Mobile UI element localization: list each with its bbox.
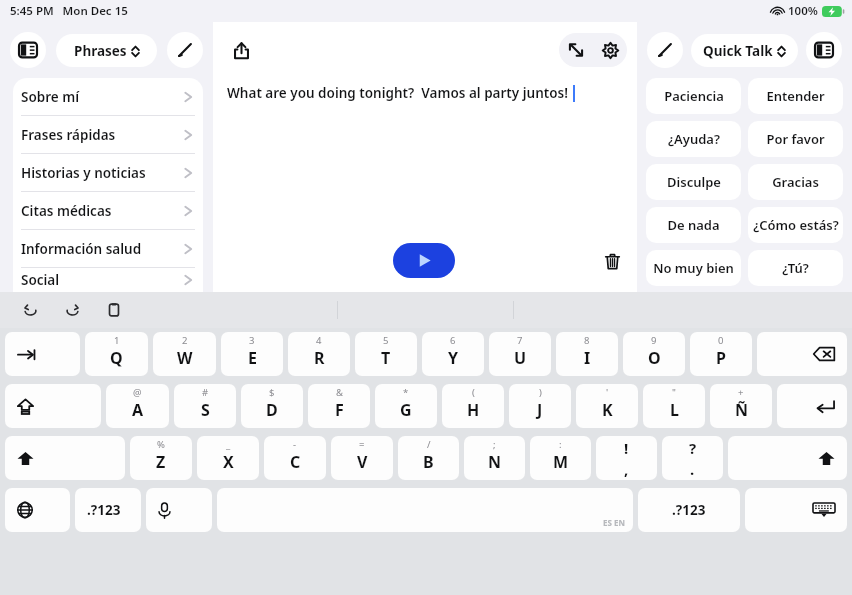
- staticText: Citas médicas: [21, 202, 184, 220]
- staticText: +: [738, 386, 744, 399]
- staticText: 0: [718, 334, 724, 347]
- button[interactable]: Social: [21, 268, 193, 292]
- button[interactable]: Shift: [5, 436, 125, 480]
- staticText: 6: [450, 334, 456, 347]
- button[interactable]: .?123: [75, 488, 141, 532]
- button[interactable]: 9: [623, 332, 685, 376]
- staticText: ¿Cómo estás?: [753, 216, 839, 234]
- button[interactable]: /: [398, 436, 459, 480]
- button[interactable]: $: [241, 384, 303, 428]
- button[interactable]: Speak: [393, 243, 455, 278]
- button[interactable]: Gracias: [748, 164, 843, 200]
- button[interactable]: Redo: [60, 298, 84, 322]
- staticText: F: [335, 399, 344, 421]
- button[interactable]: 8: [556, 332, 618, 376]
- staticText: .: [690, 459, 695, 479]
- button[interactable]: Citas médicas: [21, 192, 193, 229]
- button[interactable]: ;: [464, 436, 525, 480]
- button[interactable]: 4: [288, 332, 350, 376]
- button[interactable]: Hide keyboard: [745, 488, 847, 532]
- button[interactable]: ': [576, 384, 638, 428]
- button[interactable]: !: [596, 436, 657, 480]
- button[interactable]: Edit phrases: [647, 32, 683, 68]
- button[interactable]: Por favor: [748, 121, 843, 157]
- button[interactable]: Edit: [167, 32, 203, 68]
- button[interactable]: Shift: [728, 436, 847, 480]
- button[interactable]: Expand: [559, 33, 593, 67]
- button[interactable]: Delete: [594, 243, 630, 279]
- button[interactable]: Undo: [18, 298, 42, 322]
- button[interactable]: Frases rápidas: [21, 116, 193, 153]
- staticText: ;: [493, 438, 496, 451]
- button[interactable]: Toggle panel: [806, 32, 842, 68]
- button[interactable]: &: [308, 384, 370, 428]
- staticText: Z: [156, 451, 166, 473]
- button[interactable]: Toggle sidebar: [10, 32, 46, 68]
- button[interactable]: Sobre mí: [21, 78, 193, 115]
- staticText: C: [290, 451, 301, 473]
- staticText: What are you doing tonight? Vamos al par…: [227, 84, 568, 102]
- button[interactable]: +: [710, 384, 772, 428]
- button[interactable]: 1: [85, 332, 148, 376]
- button[interactable]: 2: [153, 332, 216, 376]
- staticText: (: [472, 386, 475, 399]
- staticText: @: [133, 386, 142, 399]
- button[interactable]: No muy bien: [646, 250, 741, 286]
- staticText: J: [537, 399, 543, 421]
- button[interactable]: 3: [221, 332, 283, 376]
- staticText: Frases rápidas: [21, 126, 184, 144]
- button[interactable]: #: [174, 384, 236, 428]
- staticText: V: [357, 451, 368, 473]
- staticText: ): [539, 386, 542, 399]
- button[interactable]: @: [106, 384, 169, 428]
- button[interactable]: :: [530, 436, 591, 480]
- button[interactable]: Disculpe: [646, 164, 741, 200]
- button[interactable]: ¿Ayuda?: [646, 121, 741, 157]
- staticText: ¿Tú?: [782, 259, 809, 277]
- button[interactable]: Clipboard: [102, 298, 126, 322]
- button[interactable]: ": [643, 384, 705, 428]
- button[interactable]: Phrases: [56, 34, 157, 67]
- staticText: /: [427, 438, 431, 451]
- button[interactable]: Caps lock: [5, 384, 101, 428]
- button[interactable]: Quick Talk: [691, 34, 798, 67]
- button[interactable]: _: [197, 436, 259, 480]
- button[interactable]: Paciencia: [646, 78, 741, 114]
- button[interactable]: ¿Tú?: [748, 250, 843, 286]
- button[interactable]: =: [331, 436, 393, 480]
- staticText: ,: [624, 459, 629, 479]
- button[interactable]: 0: [690, 332, 752, 376]
- button[interactable]: -: [264, 436, 326, 480]
- button[interactable]: Space: [217, 488, 633, 532]
- button[interactable]: 5: [355, 332, 417, 376]
- button[interactable]: De nada: [646, 207, 741, 243]
- staticText: X: [223, 451, 234, 473]
- button[interactable]: *: [375, 384, 437, 428]
- button[interactable]: Settings: [593, 33, 627, 67]
- button[interactable]: 7: [489, 332, 551, 376]
- staticText: I: [584, 347, 591, 369]
- staticText: $: [269, 386, 275, 399]
- button[interactable]: Historias y noticias: [21, 154, 193, 191]
- staticText: ': [606, 386, 609, 399]
- button[interactable]: .?123: [638, 488, 740, 532]
- button[interactable]: Change language: [5, 488, 70, 532]
- staticText: K: [602, 399, 613, 421]
- button[interactable]: Enter: [777, 384, 847, 428]
- button[interactable]: 6: [422, 332, 484, 376]
- button[interactable]: %: [130, 436, 192, 480]
- button[interactable]: Información salud: [21, 230, 193, 267]
- button[interactable]: Entender: [748, 78, 843, 114]
- button[interactable]: ?: [662, 436, 723, 480]
- staticText: Sobre mí: [21, 88, 184, 106]
- button[interactable]: ¿Cómo estás?: [748, 207, 843, 243]
- button[interactable]: (: [442, 384, 504, 428]
- staticText: 100%: [788, 3, 818, 19]
- button[interactable]: ): [509, 384, 571, 428]
- staticText: =: [359, 438, 365, 451]
- button[interactable]: Backspace: [757, 332, 847, 376]
- button[interactable]: Share: [223, 32, 259, 68]
- button[interactable]: Tab: [5, 332, 80, 376]
- button[interactable]: Voice input: [146, 488, 212, 532]
- staticText: M: [553, 451, 569, 473]
